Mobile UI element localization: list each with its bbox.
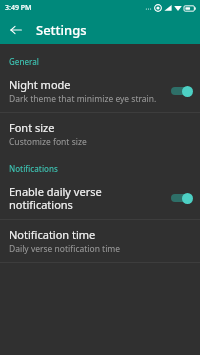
button[interactable]: Back: [6, 20, 26, 40]
button[interactable]: Toggle on: [169, 191, 193, 205]
staticText: 3:49 PM: [5, 3, 32, 13]
button[interactable]: Enable daily verse notifications: [0, 177, 200, 219]
staticText: Night mode: [9, 77, 71, 92]
staticText: Notifications: [9, 163, 58, 174]
button[interactable]: Font size: [0, 113, 200, 155]
staticText: Settings: [36, 21, 87, 39]
staticText: General: [9, 56, 39, 67]
staticText: Dark theme that minimize eye strain.: [9, 93, 157, 105]
button[interactable]: Notification time: [0, 220, 200, 262]
staticText: Customize font size: [9, 136, 87, 148]
staticText: Daily verse notification time: [9, 243, 121, 255]
button[interactable]: Toggle on: [169, 84, 193, 98]
staticText: Enable daily verse notifications: [9, 184, 163, 212]
staticText: Font size: [9, 120, 55, 135]
staticText: Notification time: [9, 227, 96, 242]
button[interactable]: Night mode: [0, 70, 200, 112]
